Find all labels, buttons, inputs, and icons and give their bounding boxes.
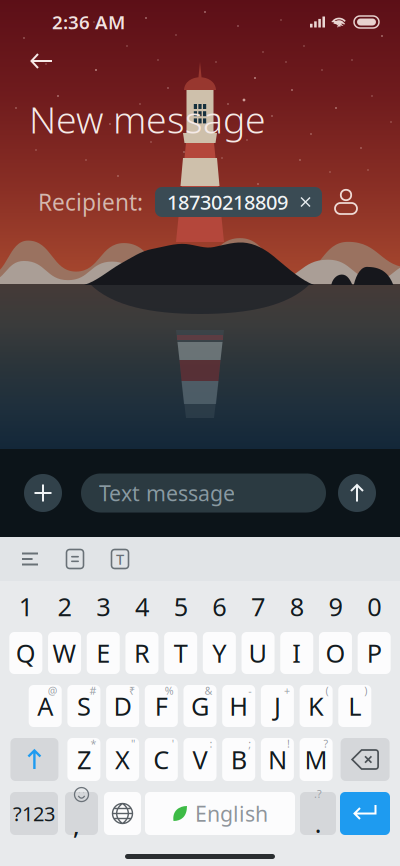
button[interactable]: 3 [87,586,120,626]
button[interactable]: ; [222,738,255,781]
button[interactable]: 8 [280,586,313,626]
staticText: .? [314,787,322,801]
staticText: , [73,810,80,841]
button[interactable]: Send [338,474,376,512]
staticText: : [209,736,212,751]
staticText: B [231,743,247,776]
button[interactable]: English [145,792,295,835]
button[interactable]: U [242,632,275,674]
staticText: H [229,689,248,723]
button[interactable]: & [183,685,216,727]
button[interactable]: 9 [319,586,352,626]
staticText: 4 [135,590,149,623]
staticText: * [90,736,96,751]
button[interactable]: @ [29,685,62,727]
button[interactable]: : [183,738,216,781]
button[interactable]: Shift [10,738,58,781]
staticText: J [274,689,281,723]
button[interactable]: 6 [203,586,236,626]
staticText: Text message [99,479,235,507]
staticText: S [77,689,91,723]
staticText: X [115,743,130,776]
button[interactable]: 2 [48,586,81,626]
button[interactable]: Contacts [325,181,367,223]
button[interactable]: Emoji and comma [65,792,98,835]
staticText: ' [172,736,174,751]
button[interactable]: Text format [103,541,137,577]
button[interactable]: Q [9,632,42,674]
staticText: - [248,683,251,698]
staticText: 5 [174,590,188,623]
button[interactable]: Paragraph style [58,541,92,577]
staticText: O [325,636,345,670]
staticText: K [308,689,324,723]
button[interactable]: ! [261,738,294,781]
staticText: 8 [290,590,304,623]
staticText: % [165,683,174,698]
staticText: F [155,689,168,723]
button[interactable]: R [125,632,158,674]
button[interactable]: Return [340,792,390,835]
staticText: I [292,636,301,670]
staticText: 7 [251,590,265,623]
staticText: 1 [19,590,33,623]
button[interactable]: 0 [358,586,391,626]
button[interactable]: 4 [125,586,158,626]
staticText: ₹ [129,683,135,698]
button[interactable]: ₹ [106,685,139,727]
staticText: @ [48,683,58,698]
staticText: Z [77,743,91,776]
staticText: English [195,799,268,828]
staticText: . [315,809,321,839]
staticText: E [96,636,110,670]
button[interactable]: Y [203,632,236,674]
button[interactable]: E [87,632,120,674]
button[interactable]: % [145,685,178,727]
button[interactable]: 7 [242,586,275,626]
button[interactable]: " [106,738,139,781]
button[interactable]: Back [23,44,60,78]
button[interactable]: Add attachment [24,474,62,512]
button[interactable]: ) [338,685,371,727]
staticText: T [174,636,188,670]
staticText: 2 [58,590,72,623]
staticText: 2:36 AM [52,10,125,34]
staticText: + [284,683,290,698]
button[interactable]: T [164,632,197,674]
button[interactable]: W [48,632,81,674]
staticText: Recipient: [38,187,143,217]
staticText: 18730218809 [167,189,288,215]
staticText: 9 [328,590,342,623]
staticText: # [89,683,96,698]
staticText: C [153,743,169,776]
button[interactable]: P [358,632,391,674]
button[interactable]: O [319,632,352,674]
button[interactable]: * [67,738,100,781]
staticText: A [37,689,53,723]
button[interactable]: 1 [9,586,42,626]
button[interactable]: Text message [81,473,326,512]
button[interactable]: I [280,632,313,674]
button[interactable]: List [13,544,47,573]
button[interactable]: # [67,685,100,727]
staticText: 6 [212,590,226,623]
button[interactable]: 18730218809 [155,187,322,217]
button[interactable]: ' [145,738,178,781]
staticText: New message [29,94,266,144]
staticText: 3 [96,590,110,623]
button[interactable]: Delete [341,738,390,781]
button[interactable]: - [222,685,255,727]
button[interactable]: 5 [164,586,197,626]
staticText: " [131,736,135,751]
staticText: V [192,743,207,776]
button[interactable]: + [261,685,294,727]
button[interactable]: ( [300,685,333,727]
staticText: ! [287,736,290,751]
button[interactable]: Period [300,792,336,835]
button[interactable]: ?123 [10,792,58,835]
staticText: 0 [367,590,381,623]
button[interactable]: Switch language [104,792,141,835]
staticText: P [367,636,382,670]
staticText: G [191,689,209,723]
button[interactable]: ? [300,738,333,781]
